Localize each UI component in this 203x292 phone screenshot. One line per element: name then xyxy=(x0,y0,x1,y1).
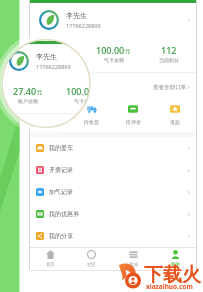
staticText: 加气记录 xyxy=(49,188,73,196)
staticText: 查看全部订单 xyxy=(153,84,186,91)
staticText: 我的优惠券 xyxy=(49,210,79,218)
button[interactable]: 查看全部订单 xyxy=(123,123,161,134)
button[interactable]: 退款 xyxy=(154,94,196,125)
staticText: 下载火 xyxy=(144,263,201,287)
staticText: 李先生 xyxy=(66,11,87,20)
staticText: 元 xyxy=(67,48,73,55)
button[interactable]: 商城 xyxy=(112,248,154,270)
staticText: 账户余额 xyxy=(48,57,68,63)
staticText: 17766228899 xyxy=(36,63,71,70)
staticText: 100.00 xyxy=(96,44,125,56)
staticText: 气卡余额 xyxy=(104,57,124,63)
button[interactable]: 100.00 xyxy=(56,78,111,104)
staticText: 社区 xyxy=(87,262,96,268)
button[interactable]: 加气记录 xyxy=(30,181,196,203)
staticText: 我的订单 xyxy=(8,125,34,133)
staticText: 待付款 xyxy=(13,160,28,166)
staticText: 我的订单 xyxy=(38,84,64,92)
button[interactable]: 开票记录 xyxy=(30,159,196,181)
button[interactable]: 李先生 xyxy=(0,44,166,78)
staticText: 我的优惠券 xyxy=(19,251,49,259)
button[interactable]: 27.40 xyxy=(30,37,86,63)
button[interactable]: 27.40 xyxy=(0,78,56,104)
staticText: 气卡余额 xyxy=(74,98,94,104)
button[interactable]: 待付款 xyxy=(30,94,71,125)
staticText: 待评价 xyxy=(126,119,141,125)
staticText: 27.40 xyxy=(43,44,67,56)
staticText: 李先生 xyxy=(36,52,57,61)
button[interactable]: 加气记录 xyxy=(0,222,166,244)
button[interactable]: 待收货 xyxy=(41,135,82,166)
staticText: 当前积分 xyxy=(159,57,179,63)
staticText: 我的分享 xyxy=(19,273,43,281)
staticText: 112 xyxy=(161,44,177,56)
staticText: 账户余额 xyxy=(18,98,38,104)
staticText: 待收货 xyxy=(84,119,99,125)
staticText: 我的 xyxy=(171,262,180,268)
button[interactable]: 首页 xyxy=(0,289,41,292)
staticText: 商城 xyxy=(129,262,138,268)
button[interactable]: 社区 xyxy=(71,248,112,270)
button[interactable]: 112 xyxy=(111,78,166,104)
staticText: 开票记录 xyxy=(49,166,73,174)
button[interactable]: 我的爱车 xyxy=(30,137,196,159)
button[interactable]: 查看全部订单 xyxy=(153,82,191,93)
button[interactable]: 我的爱车 xyxy=(0,178,166,200)
staticText: 我的爱车 xyxy=(19,185,43,193)
button[interactable]: 待付款 xyxy=(0,135,41,166)
staticText: 元 xyxy=(125,48,131,55)
button[interactable]: 112 xyxy=(141,37,196,63)
staticText: 我的爱车 xyxy=(49,144,73,152)
button[interactable]: 首页 xyxy=(30,248,71,270)
staticText: 加气记录 xyxy=(19,229,43,237)
staticText: xiazaihuo.com xyxy=(146,282,193,291)
staticText: 元 xyxy=(37,89,43,96)
staticText: 我的分享 xyxy=(49,232,73,240)
button[interactable]: 100.00 xyxy=(86,37,141,63)
button[interactable]: 我的分享 xyxy=(30,225,196,247)
button[interactable]: 李先生 xyxy=(30,3,196,37)
button[interactable]: 待评价 xyxy=(112,94,154,125)
staticText: 27.40 xyxy=(13,85,37,97)
staticText: 17766228899 xyxy=(66,22,101,29)
staticText: 退款 xyxy=(170,119,180,125)
button[interactable]: 我的优惠券 xyxy=(30,203,196,225)
staticText: 开票记录 xyxy=(19,207,43,215)
button[interactable]: 我的 xyxy=(154,248,196,270)
staticText: 首页 xyxy=(46,262,55,268)
button[interactable]: 我的优惠券 xyxy=(0,244,166,266)
staticText: 100.00 xyxy=(66,85,95,97)
button[interactable]: 待收货 xyxy=(71,94,112,125)
button[interactable]: 我的分享 xyxy=(0,266,166,288)
button[interactable]: 开票记录 xyxy=(0,200,166,222)
